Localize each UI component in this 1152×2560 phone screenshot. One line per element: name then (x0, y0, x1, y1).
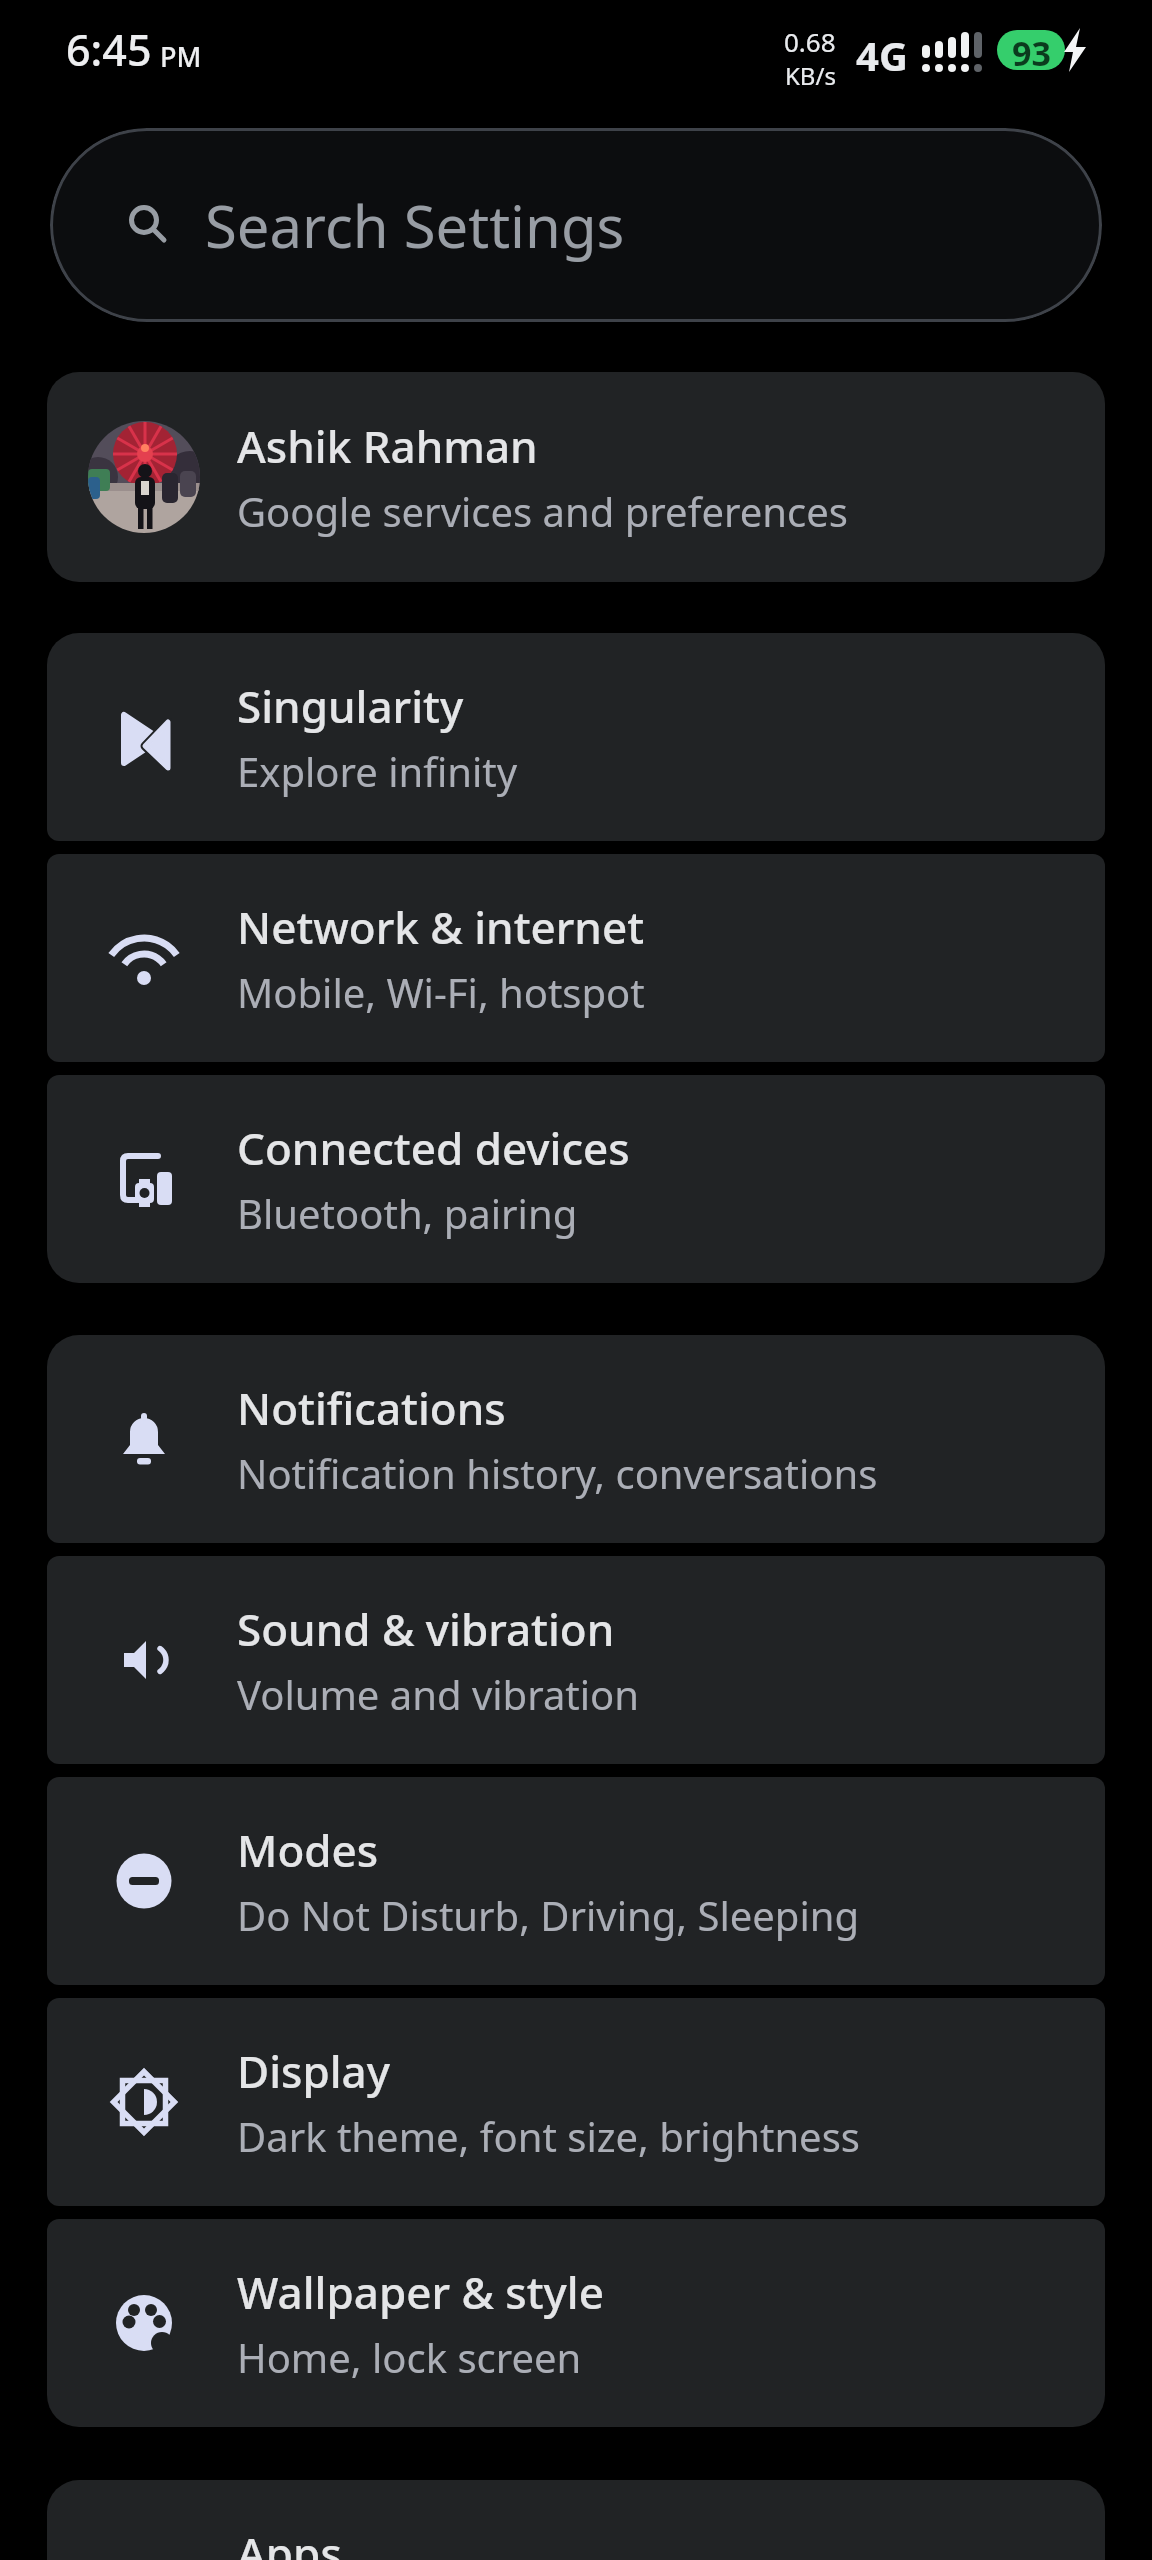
staticText: Network & internet (237, 897, 645, 957)
staticText: Apps (237, 2523, 342, 2560)
button[interactable]: Apps (47, 2480, 1105, 2560)
button[interactable]: Modes (47, 1777, 1105, 1985)
button[interactable]: Display (47, 1998, 1105, 2206)
staticText: PM (160, 38, 202, 75)
staticText: Ashik Rahman (237, 416, 538, 476)
staticText: Search Settings (205, 186, 625, 265)
staticText: Wallpaper & style (237, 2262, 604, 2322)
staticText: Dark theme, font size, brightness (237, 2109, 860, 2163)
staticText: Notification history, conversations (237, 1446, 878, 1500)
button[interactable]: Notifications (47, 1335, 1105, 1543)
button[interactable]: Wallpaper & style (47, 2219, 1105, 2427)
staticText: Explore infinity (237, 744, 518, 798)
button[interactable]: Search Settings (50, 128, 1102, 322)
staticText: KB/s (785, 59, 836, 92)
staticText: 4G (856, 28, 908, 82)
staticText: Do Not Disturb, Driving, Sleeping (237, 1888, 860, 1942)
button[interactable]: Connected devices (47, 1075, 1105, 1283)
staticText: 6:45 (66, 20, 152, 79)
staticText: 0.68 (784, 24, 836, 59)
staticText: Google services and preferences (237, 484, 848, 538)
staticText: Connected devices (237, 1118, 630, 1178)
staticText: Notifications (237, 1378, 506, 1438)
button[interactable]: Ashik Rahman (47, 372, 1105, 582)
button[interactable]: Network & internet (47, 854, 1105, 1062)
button[interactable]: Sound & vibration (47, 1556, 1105, 1764)
staticText: 93 (1012, 30, 1051, 70)
staticText: Volume and vibration (237, 1667, 640, 1721)
staticText: Modes (237, 1820, 379, 1880)
staticText: Mobile, Wi-Fi, hotspot (237, 965, 645, 1019)
button[interactable]: Singularity (47, 633, 1105, 841)
staticText: Bluetooth, pairing (237, 1186, 578, 1240)
staticText: Display (237, 2041, 390, 2101)
staticText: Sound & vibration (237, 1599, 615, 1659)
staticText: Home, lock screen (237, 2330, 582, 2384)
staticText: Singularity (237, 676, 464, 736)
